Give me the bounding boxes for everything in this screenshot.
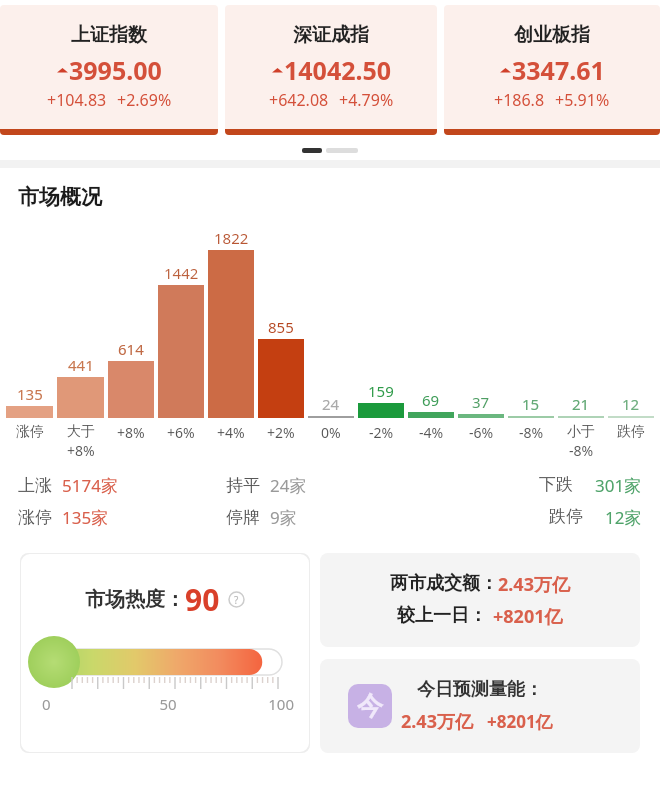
staticText: 深证成指	[293, 23, 369, 47]
staticText: 2.43万亿	[401, 709, 473, 734]
staticText: 今	[357, 690, 383, 723]
staticText: +6%	[167, 423, 195, 442]
staticText: 135家	[62, 506, 109, 529]
staticText: 9家	[270, 506, 297, 529]
staticText: +8201亿	[487, 710, 553, 733]
staticText: 跌停	[617, 423, 645, 441]
staticText: 24家	[270, 474, 307, 497]
button[interactable]: 两市成交额：	[320, 553, 640, 647]
staticText: 12	[622, 394, 640, 414]
staticText: +4%	[217, 423, 245, 442]
staticText: 301家	[595, 474, 642, 497]
staticText: 市场概况	[18, 184, 102, 210]
staticText: +8%	[117, 423, 145, 442]
staticText: 创业板指	[514, 23, 590, 47]
staticText: 50	[126, 694, 210, 714]
button[interactable]: 市场热度：	[20, 553, 310, 753]
staticText: 0%	[321, 423, 341, 442]
staticText: 3347.61	[512, 53, 605, 87]
staticText: 441	[68, 355, 94, 375]
staticText: ?	[234, 593, 239, 607]
staticText: -4%	[419, 423, 444, 442]
staticText: -6%	[469, 423, 494, 442]
staticText: 1822	[214, 228, 249, 248]
staticText: +8%	[67, 441, 95, 460]
staticText: 37	[472, 392, 490, 412]
staticText: 上证指数	[71, 23, 147, 47]
staticText: +8201亿	[493, 604, 563, 629]
staticText: 涨停	[18, 507, 62, 528]
staticText: +2%	[267, 423, 295, 442]
staticText: 5174家	[62, 474, 118, 497]
staticText: 较上一日：	[397, 604, 487, 627]
staticText: 24	[322, 394, 340, 414]
staticText: -8%	[519, 423, 544, 442]
staticText: 135	[17, 384, 43, 404]
staticText: 855	[268, 317, 294, 337]
staticText: 14042.50	[284, 53, 392, 87]
staticText: 100	[210, 694, 294, 714]
staticText: 持平	[226, 475, 270, 496]
staticText: +186.8	[494, 89, 545, 111]
staticText: 21	[572, 394, 590, 414]
staticText: 停牌	[226, 507, 270, 528]
staticText: 12家	[605, 506, 642, 529]
staticText: 跌停	[549, 506, 583, 527]
staticText: 159	[368, 381, 394, 401]
staticText: 90	[185, 579, 220, 620]
staticText: 2.43万亿	[498, 572, 570, 597]
staticText: +642.08	[269, 89, 329, 111]
button[interactable]: 创业板指	[444, 5, 660, 135]
staticText: +5.91%	[555, 89, 610, 111]
staticText: 0	[42, 694, 126, 714]
staticText: 下跌	[539, 474, 573, 495]
staticText: 1442	[164, 263, 199, 283]
staticText: -2%	[369, 423, 394, 442]
staticText: 涨停	[16, 423, 44, 441]
button[interactable]: 上证指数	[0, 5, 218, 135]
staticText: +104.83	[47, 89, 107, 111]
staticText: 大于	[67, 423, 95, 441]
staticText: +4.79%	[339, 89, 394, 111]
staticText: 小于	[567, 423, 595, 441]
staticText: 上涨	[18, 475, 62, 496]
button[interactable]: 今日预测量能：	[320, 659, 640, 753]
button[interactable]: 深证成指	[225, 5, 437, 135]
staticText: 市场热度：	[85, 587, 185, 612]
staticText: 614	[118, 339, 144, 359]
staticText: 15	[522, 394, 540, 414]
staticText: 69	[422, 390, 440, 410]
staticText: 两市成交额：	[390, 572, 498, 595]
staticText: 今日预测量能：	[417, 678, 543, 701]
staticText: 3995.00	[69, 53, 162, 87]
staticText: +2.69%	[117, 89, 172, 111]
staticText: -8%	[569, 441, 594, 460]
button[interactable]: 帮助	[228, 591, 245, 608]
